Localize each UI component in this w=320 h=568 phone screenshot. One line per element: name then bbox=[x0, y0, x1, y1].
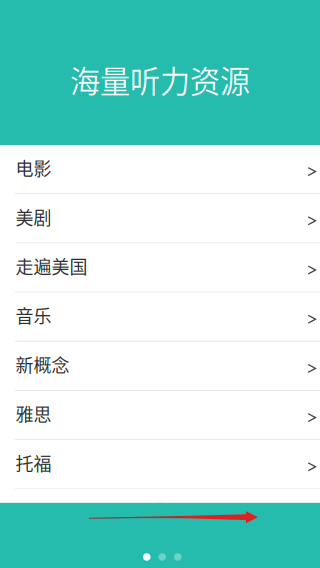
staticText: 电影 bbox=[15, 155, 51, 181]
staticText: 雅思 bbox=[15, 401, 51, 427]
button[interactable]: 新概念 bbox=[0, 342, 320, 391]
staticText: 新概念 bbox=[15, 351, 69, 377]
button[interactable]: 雅思 bbox=[0, 391, 320, 440]
button[interactable]: 美剧 bbox=[0, 194, 320, 243]
button[interactable]: 音乐 bbox=[0, 293, 320, 342]
staticText: 走遍美国 bbox=[15, 253, 87, 279]
staticText: 托福 bbox=[15, 450, 51, 476]
staticText: 美剧 bbox=[15, 204, 51, 230]
staticText: 海量听力资源 bbox=[70, 58, 250, 101]
staticText: 音乐 bbox=[15, 302, 51, 328]
button[interactable]: 走遍美国 bbox=[0, 243, 320, 293]
button[interactable]: 电影 bbox=[0, 145, 320, 194]
button[interactable]: 托福 bbox=[0, 440, 320, 489]
